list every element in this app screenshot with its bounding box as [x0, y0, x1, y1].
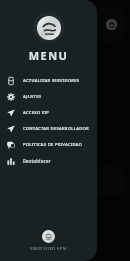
button[interactable]: POLITICAS DE PRIVACIDAD — [0, 137, 97, 153]
button[interactable]: AJUSTES — [0, 89, 97, 105]
staticText: Restablecer — [23, 158, 51, 164]
button[interactable]: Restablecer — [0, 153, 97, 169]
staticText: MENU — [0, 48, 97, 63]
staticText: AJUSTES — [23, 94, 42, 100]
staticText: ACTUALIZAR SERVIDORES — [23, 78, 80, 84]
button[interactable]: CONTACTAR DESARROLLADOR — [0, 121, 97, 137]
staticText: POLITICAS DE PRIVACIDAD — [23, 142, 83, 148]
button[interactable]: ACCESO VIP — [0, 105, 97, 121]
button[interactable]: ADD TIME — [5, 127, 130, 140]
staticText: CONTACTAR DESARROLLADOR — [23, 126, 89, 132]
button[interactable]: Power — [106, 19, 117, 30]
staticText: SIMPLIFIED VPN — [30, 246, 67, 251]
button[interactable]: ACTUALIZAR SERVIDORES — [0, 73, 97, 89]
staticText: ACCESO VIP — [23, 110, 50, 116]
